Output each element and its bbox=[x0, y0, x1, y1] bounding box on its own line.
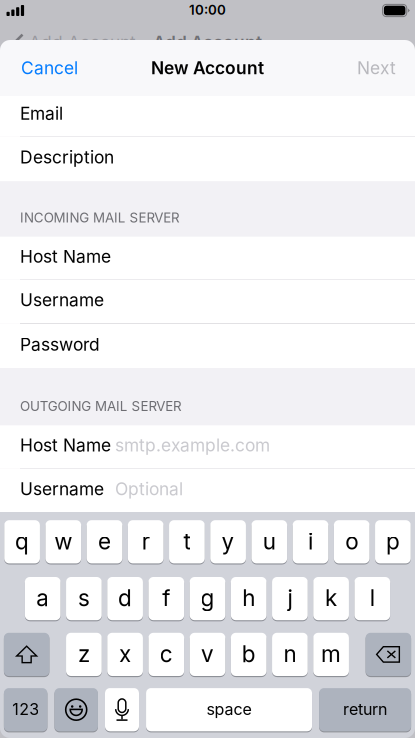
staticText: Optional bbox=[115, 478, 183, 499]
button[interactable]: Cancel bbox=[0, 46, 92, 90]
button[interactable]: Shift bbox=[4, 633, 49, 676]
staticText: v bbox=[201, 640, 214, 668]
button[interactable]: r bbox=[128, 520, 164, 563]
button[interactable]: x bbox=[107, 633, 143, 676]
staticText: Username bbox=[20, 478, 104, 499]
staticText: y bbox=[222, 528, 235, 555]
button[interactable]: c bbox=[148, 633, 184, 676]
staticText: m bbox=[321, 640, 341, 668]
staticText: f bbox=[162, 584, 170, 612]
button[interactable]: b bbox=[231, 633, 267, 676]
staticText: z bbox=[78, 640, 90, 668]
staticText: b bbox=[242, 640, 256, 668]
staticText: x bbox=[119, 640, 131, 668]
button[interactable]: Delete bbox=[366, 633, 411, 676]
button[interactable]: Host Name bbox=[0, 237, 415, 279]
button[interactable]: Next bbox=[343, 46, 415, 90]
button[interactable]: w bbox=[45, 520, 81, 563]
button[interactable]: Dictate bbox=[105, 688, 139, 731]
button[interactable]: q bbox=[4, 520, 40, 563]
staticText: Password bbox=[20, 334, 100, 355]
staticText: g bbox=[200, 584, 214, 612]
staticText: New Account bbox=[151, 57, 264, 78]
button[interactable]: return bbox=[319, 688, 411, 731]
button[interactable]: f bbox=[148, 577, 184, 620]
staticText: n bbox=[283, 640, 296, 668]
button[interactable]: Username bbox=[0, 468, 415, 512]
button[interactable]: g bbox=[190, 577, 225, 620]
button[interactable]: t bbox=[169, 520, 205, 563]
button[interactable]: k bbox=[313, 577, 349, 620]
button[interactable]: Password bbox=[0, 324, 415, 368]
staticText: OUTGOING MAIL SERVER bbox=[20, 398, 182, 414]
staticText: Add Account bbox=[29, 32, 136, 53]
staticText: j bbox=[287, 584, 292, 612]
staticText: 123 bbox=[12, 699, 39, 719]
staticText: d bbox=[118, 584, 132, 612]
button[interactable]: space bbox=[146, 688, 312, 731]
staticText: INCOMING MAIL SERVER bbox=[20, 210, 180, 226]
button[interactable]: l bbox=[354, 577, 390, 620]
staticText: Host Name bbox=[20, 435, 111, 456]
button[interactable]: v bbox=[190, 633, 225, 676]
staticText: 10:00 bbox=[189, 2, 226, 18]
staticText: c bbox=[160, 640, 173, 668]
staticText: Email bbox=[20, 103, 63, 124]
button[interactable]: p bbox=[375, 520, 411, 563]
staticText: l bbox=[370, 584, 375, 612]
button[interactable]: e bbox=[87, 520, 122, 563]
staticText: Cancel bbox=[21, 57, 78, 78]
staticText: r bbox=[142, 528, 150, 555]
staticText: return bbox=[343, 699, 387, 719]
button[interactable]: j bbox=[272, 577, 308, 620]
button[interactable]: Email bbox=[0, 96, 415, 136]
staticText: s bbox=[78, 584, 90, 612]
staticText: o bbox=[345, 528, 358, 555]
staticText: a bbox=[36, 584, 49, 612]
button[interactable]: z bbox=[66, 633, 102, 676]
staticText: p bbox=[386, 528, 400, 555]
button[interactable]: n bbox=[272, 633, 308, 676]
staticText: Username bbox=[20, 290, 104, 311]
staticText: u bbox=[263, 528, 276, 555]
staticText: space bbox=[206, 699, 251, 719]
staticText: k bbox=[325, 584, 337, 612]
button[interactable]: Username bbox=[0, 280, 415, 323]
button[interactable]: Host Name bbox=[0, 425, 415, 468]
staticText: Add Account bbox=[153, 32, 262, 53]
staticText: w bbox=[54, 528, 72, 555]
staticText: t bbox=[183, 528, 190, 555]
button[interactable]: Emoji bbox=[54, 688, 98, 731]
button[interactable]: Numbers and symbols bbox=[4, 688, 47, 731]
staticText: i bbox=[308, 528, 313, 555]
staticText: q bbox=[15, 528, 29, 555]
button[interactable]: a bbox=[25, 577, 61, 620]
button[interactable]: u bbox=[251, 520, 287, 563]
button[interactable]: h bbox=[231, 577, 267, 620]
button[interactable]: y bbox=[210, 520, 246, 563]
button[interactable]: i bbox=[293, 520, 328, 563]
button[interactable]: d bbox=[107, 577, 143, 620]
button[interactable]: s bbox=[66, 577, 102, 620]
staticText: Host Name bbox=[20, 246, 111, 267]
button[interactable]: Description bbox=[0, 136, 415, 181]
staticText: Description bbox=[20, 147, 114, 168]
staticText: smtp.example.com bbox=[115, 435, 270, 456]
staticText: e bbox=[98, 528, 111, 555]
staticText: h bbox=[242, 584, 255, 612]
button[interactable]: m bbox=[313, 633, 349, 676]
button[interactable]: o bbox=[334, 520, 369, 563]
staticText: Next bbox=[357, 57, 396, 78]
